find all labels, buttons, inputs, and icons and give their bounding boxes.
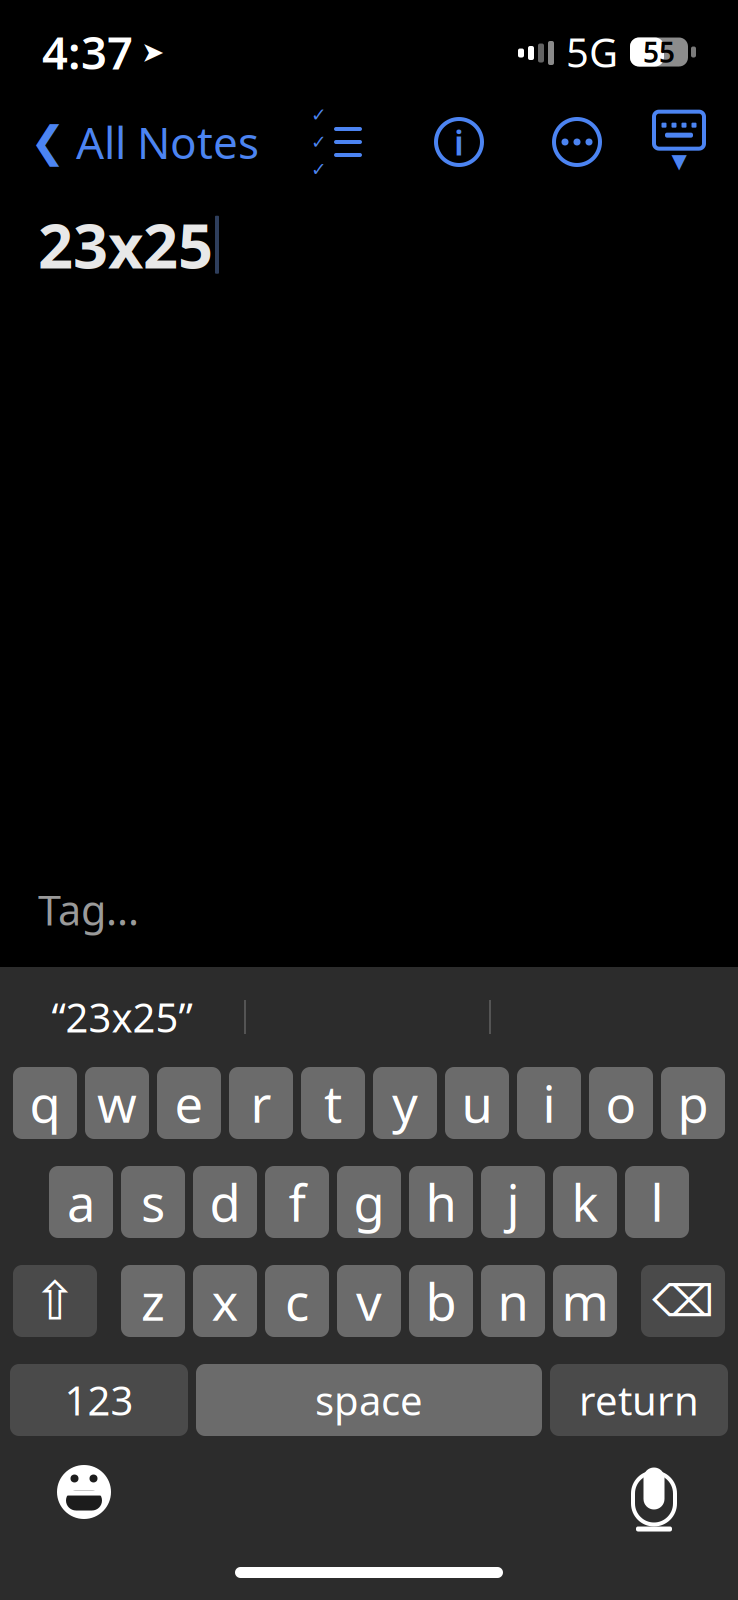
button[interactable]: z [121, 1265, 185, 1337]
button[interactable]: m [553, 1265, 617, 1337]
button[interactable]: y [373, 1067, 437, 1139]
staticText: r [250, 1069, 271, 1137]
button[interactable]: More [540, 110, 614, 174]
button[interactable]: x [193, 1265, 257, 1337]
button[interactable]: u [445, 1067, 509, 1139]
button[interactable]: h [409, 1166, 473, 1238]
button[interactable]: Dictation [606, 1444, 702, 1540]
button[interactable]: return [550, 1364, 728, 1436]
button[interactable]: a [49, 1166, 113, 1238]
staticText: w [97, 1069, 137, 1137]
button[interactable]: w [85, 1067, 149, 1139]
button[interactable]: g [337, 1166, 401, 1238]
button[interactable]: r [229, 1067, 293, 1139]
staticText: “23x25” [51, 990, 192, 1043]
staticText: i [542, 1069, 555, 1137]
staticText: d [209, 1168, 240, 1236]
staticText: v [356, 1267, 382, 1335]
staticText: 4:37 [42, 22, 133, 82]
staticText: m [561, 1267, 608, 1335]
staticText: z [141, 1267, 165, 1335]
staticText: x [211, 1267, 238, 1335]
staticText: ⇧ [32, 1271, 77, 1331]
staticText: 23x25 [38, 204, 213, 285]
staticText: e [174, 1069, 203, 1137]
staticText: u [461, 1069, 492, 1137]
button[interactable]: q [13, 1067, 77, 1139]
button[interactable]: k [553, 1166, 617, 1238]
staticText: n [497, 1267, 528, 1335]
button[interactable]: Emoji [36, 1444, 132, 1540]
button[interactable]: l [625, 1166, 689, 1238]
button[interactable]: ❮ [14, 110, 275, 174]
button[interactable]: Shift [13, 1265, 97, 1337]
staticText: t [324, 1069, 342, 1137]
staticText: ❮ [30, 118, 66, 166]
button[interactable]: c [265, 1265, 329, 1337]
staticText: p [677, 1069, 708, 1137]
staticText: c [285, 1267, 309, 1335]
button[interactable]: b [409, 1265, 473, 1337]
staticText: j [506, 1168, 519, 1236]
staticText: ✓ [311, 104, 327, 125]
button[interactable]: v [337, 1265, 401, 1337]
button[interactable]: j [481, 1166, 545, 1238]
staticText: q [29, 1069, 60, 1137]
staticText: 5G [566, 25, 618, 78]
button[interactable]: p [661, 1067, 725, 1139]
button[interactable]: Hide Keyboard [654, 110, 704, 174]
staticText: l [650, 1168, 663, 1236]
staticText: 55 [643, 33, 675, 71]
button[interactable]: Checklist [295, 110, 378, 174]
staticText: g [353, 1168, 384, 1236]
staticText: All Notes [76, 113, 259, 171]
staticText: s [141, 1168, 165, 1236]
staticText: ✓ [311, 131, 327, 153]
staticText: k [571, 1168, 598, 1236]
button[interactable]: e [157, 1067, 221, 1139]
button[interactable]: d [193, 1166, 257, 1238]
staticText: a [67, 1168, 95, 1236]
staticText: space [315, 1373, 423, 1426]
staticText: b [425, 1267, 456, 1335]
button[interactable]: space [196, 1364, 542, 1436]
staticText: Tag... [38, 882, 139, 937]
staticText: h [425, 1168, 456, 1236]
staticText: ▼ [671, 150, 686, 172]
button[interactable]: Delete [641, 1265, 725, 1337]
button[interactable]: Info [422, 110, 496, 174]
staticText: ➤ [141, 36, 164, 68]
button[interactable]: “23x25” [0, 988, 244, 1046]
button[interactable]: i [517, 1067, 581, 1139]
staticText: i [454, 119, 464, 165]
staticText: ⌫ [652, 1276, 714, 1326]
button[interactable]: 123 [10, 1364, 188, 1436]
staticText: y [392, 1069, 418, 1137]
button[interactable]: f [265, 1166, 329, 1238]
staticText: o [605, 1069, 636, 1137]
staticText: 123 [64, 1373, 133, 1426]
button[interactable]: n [481, 1265, 545, 1337]
staticText: ✓ [311, 159, 327, 180]
staticText: f [288, 1168, 305, 1236]
button[interactable]: o [589, 1067, 653, 1139]
button[interactable]: t [301, 1067, 365, 1139]
button[interactable]: s [121, 1166, 185, 1238]
staticText: return [579, 1373, 699, 1426]
